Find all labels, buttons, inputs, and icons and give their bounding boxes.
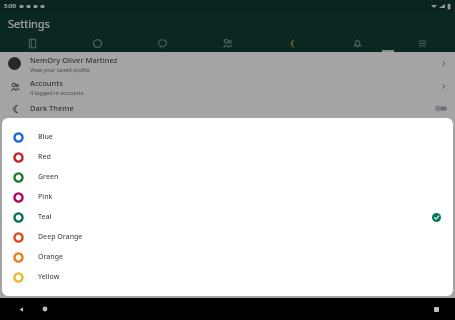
button[interactable]: Accounts (0, 75, 455, 98)
staticText: Yellow (38, 272, 60, 282)
staticText: 4 logged in accounts. (30, 89, 85, 96)
button[interactable]: NemOry Oliver Martinez (0, 52, 455, 75)
button[interactable]: Back (12, 298, 30, 320)
staticText: Deep Orange (38, 232, 83, 242)
staticText: View your saved profile (30, 66, 90, 73)
staticText: Blue (38, 132, 53, 142)
button[interactable]: Green (2, 167, 453, 187)
staticText: Dark Theme (30, 103, 74, 113)
button[interactable]: Red (2, 147, 453, 167)
staticText: Orange (38, 252, 64, 262)
button[interactable]: Tab 4 (195, 34, 260, 52)
staticText: Teal (38, 212, 52, 222)
staticText: Green (38, 172, 59, 182)
staticText: NemOry Oliver Martinez (30, 55, 118, 65)
button[interactable]: Teal (2, 207, 453, 227)
button[interactable]: Tab 6 (325, 34, 390, 52)
button[interactable]: Dark Theme (0, 98, 455, 118)
button[interactable]: Tab 1 (0, 34, 65, 52)
button[interactable]: Recents (427, 300, 445, 318)
staticText: Settings (8, 16, 50, 31)
button[interactable]: Blue (2, 127, 453, 147)
button[interactable]: Orange (2, 247, 453, 267)
staticText: Pink (38, 192, 53, 202)
button[interactable]: Tab 5 (260, 34, 325, 52)
button[interactable]: Tab 7 (390, 34, 455, 52)
button[interactable]: Deep Orange (2, 227, 453, 247)
staticText: Red (38, 152, 51, 162)
button[interactable]: Pink (2, 187, 453, 207)
button[interactable]: Home (36, 298, 54, 320)
button[interactable]: Yellow (2, 267, 453, 287)
button[interactable]: Tab 2 (65, 34, 130, 52)
staticText: 5:00 (4, 2, 16, 10)
staticText: Accounts (30, 78, 63, 88)
button[interactable]: Tab 3 (130, 34, 195, 52)
